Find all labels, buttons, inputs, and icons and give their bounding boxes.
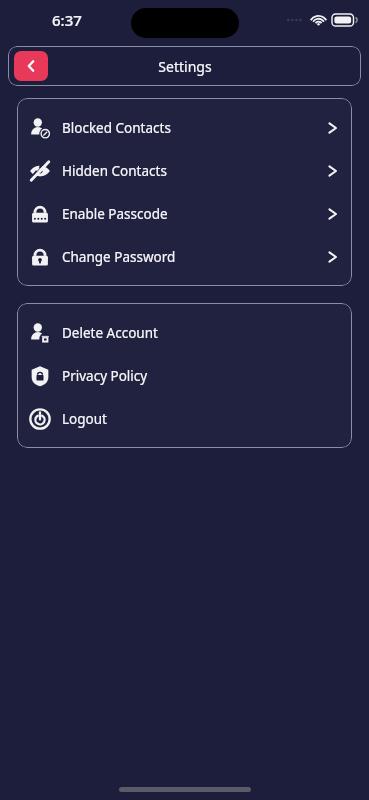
button[interactable]: Enable Passcode xyxy=(17,192,352,235)
button[interactable]: Logout xyxy=(17,397,352,440)
staticText: Blocked Contacts xyxy=(62,119,171,137)
button[interactable]: Privacy Policy xyxy=(17,354,352,397)
button[interactable]: Back xyxy=(14,51,48,81)
staticText: Privacy Policy xyxy=(62,367,148,385)
button[interactable]: Change Password xyxy=(17,235,352,278)
staticText: Logout xyxy=(62,410,107,428)
button[interactable]: Hidden Contacts xyxy=(17,149,352,192)
staticText: 6:37 xyxy=(52,10,82,30)
staticText: Delete Account xyxy=(62,324,158,342)
staticText: Settings xyxy=(158,57,212,76)
staticText: Change Password xyxy=(62,248,176,266)
staticText: Hidden Contacts xyxy=(62,162,167,180)
button[interactable]: Blocked Contacts xyxy=(17,106,352,149)
staticText: Enable Passcode xyxy=(62,205,168,223)
button[interactable]: Delete Account xyxy=(17,311,352,354)
